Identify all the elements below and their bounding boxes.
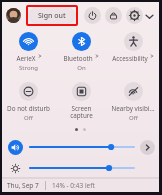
button[interactable]: Accessibility bbox=[107, 32, 159, 63]
staticText: On bbox=[77, 64, 86, 72]
staticText: Screen capture bbox=[70, 104, 93, 120]
staticText: Do not disturb bbox=[7, 104, 50, 113]
button[interactable]: Settings bbox=[126, 7, 143, 24]
button[interactable]: Lock bbox=[105, 7, 122, 24]
button[interactable]: Brightness bbox=[8, 161, 23, 176]
staticText: Thu, Sep 7 bbox=[7, 181, 39, 190]
button[interactable]: Mute volume bbox=[8, 140, 23, 155]
staticText: AerieX bbox=[16, 54, 36, 63]
staticText: Strong bbox=[19, 64, 38, 72]
staticText: 14% - 0:43 left bbox=[52, 181, 95, 190]
staticText: Off bbox=[24, 114, 33, 122]
staticText: Sign out bbox=[38, 11, 66, 21]
staticText: Accessibility bbox=[112, 54, 148, 63]
staticText: Bluetooth bbox=[63, 54, 93, 63]
button[interactable]: Sign out bbox=[28, 7, 76, 24]
button[interactable]: Page 2 bbox=[83, 128, 86, 131]
button[interactable]: Nearby visibi... bbox=[107, 82, 159, 122]
button[interactable]: Account bbox=[6, 8, 21, 23]
staticText: Off bbox=[129, 114, 138, 122]
button[interactable]: Screen capture bbox=[55, 82, 107, 120]
button[interactable]: AerieX bbox=[2, 32, 55, 72]
button[interactable]: Bluetooth bbox=[55, 32, 107, 72]
button[interactable]: Audio settings bbox=[140, 140, 155, 155]
button[interactable]: Page 1 bbox=[75, 128, 78, 131]
staticText: Nearby visibi... bbox=[111, 104, 155, 113]
button[interactable]: Brightness slider bbox=[30, 161, 134, 175]
button[interactable]: Power bbox=[84, 7, 101, 24]
button[interactable]: Volume slider bbox=[30, 140, 134, 154]
button[interactable]: Do not disturb bbox=[2, 82, 55, 122]
button[interactable]: Thu, Sep 7 bbox=[7, 181, 39, 190]
button[interactable]: 14% - 0:43 left bbox=[52, 181, 95, 190]
button[interactable]: Collapse bbox=[143, 8, 155, 24]
